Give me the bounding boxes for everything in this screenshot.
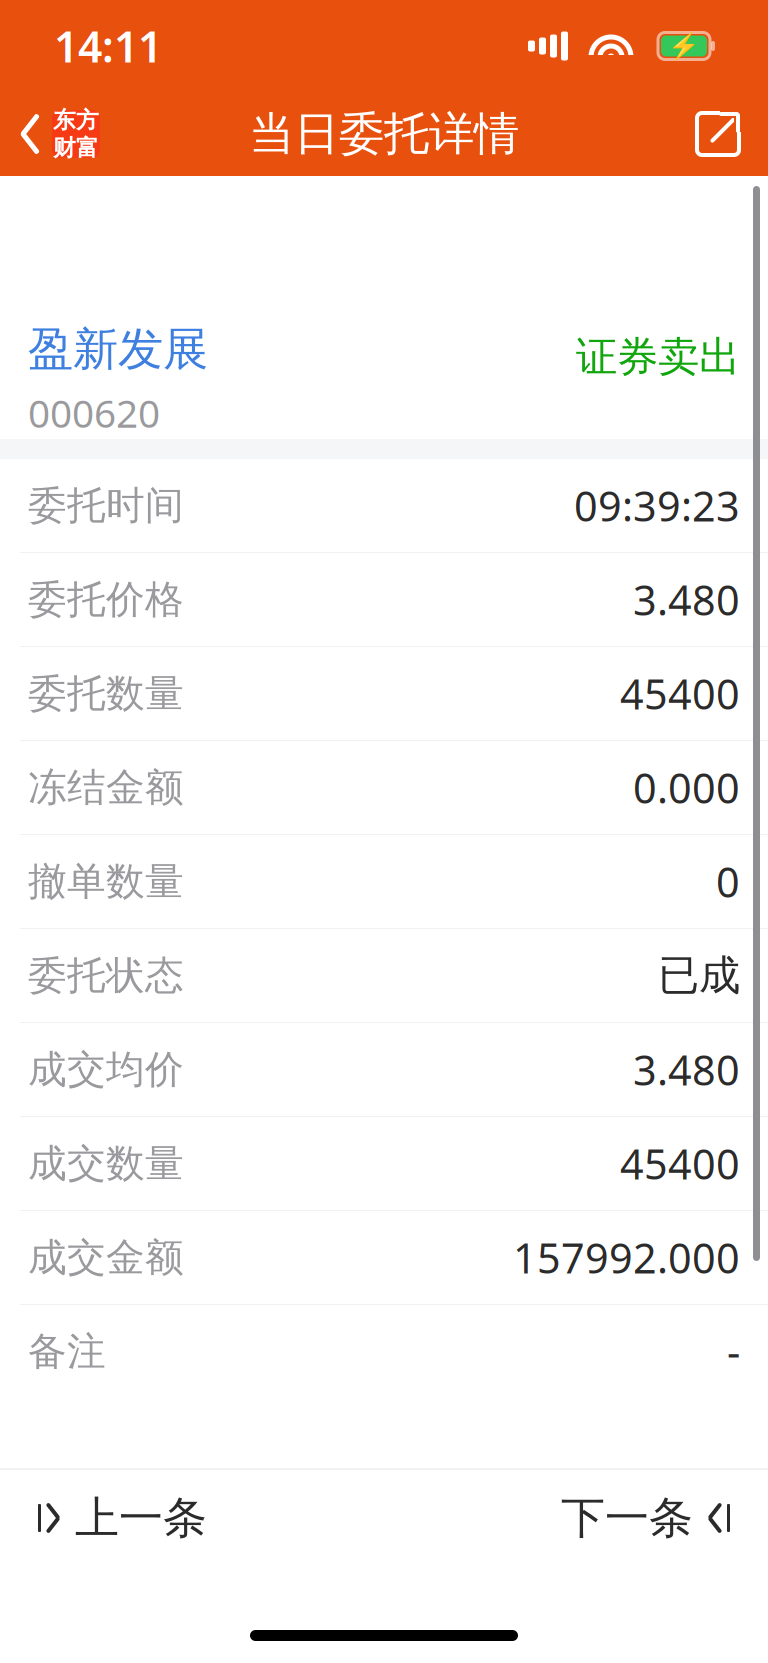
staticText: 盈新发展 — [28, 321, 208, 377]
staticText: 下一条 — [561, 1491, 693, 1545]
staticText: 157992.000 — [513, 1230, 740, 1285]
staticText: 委托价格 — [28, 576, 184, 623]
staticText: 委托状态 — [28, 952, 184, 999]
staticText: 撤单数量 — [28, 858, 184, 905]
staticText: 3.480 — [633, 1042, 740, 1097]
staticText: 备注 — [28, 1328, 106, 1375]
staticText: 东方 — [53, 106, 99, 134]
staticText: 45400 — [620, 666, 740, 721]
staticText: 成交金额 — [28, 1234, 184, 1281]
staticText: 0 — [716, 854, 740, 909]
staticText: ⚡ — [668, 31, 700, 60]
staticText: 成交数量 — [28, 1140, 184, 1187]
staticText: 证券卖出 — [576, 331, 740, 382]
staticText: 已成 — [658, 950, 740, 1001]
staticText: 3.480 — [633, 572, 740, 627]
staticText: 09:39:23 — [574, 478, 740, 533]
button[interactable]: Share — [668, 94, 768, 174]
button[interactable]: Back — [0, 94, 118, 174]
staticText: 财富 — [53, 134, 99, 162]
staticText: 0.000 — [633, 760, 740, 815]
staticText: 委托数量 — [28, 670, 184, 717]
staticText: 45400 — [620, 1136, 740, 1191]
staticText: 当日委托详情 — [249, 106, 519, 162]
staticText: 委托时间 — [28, 482, 184, 529]
staticText: 上一条 — [75, 1491, 207, 1545]
button[interactable]: 下一条 — [523, 1470, 768, 1566]
staticText: 冻结金额 — [28, 764, 184, 811]
button[interactable]: 上一条 — [0, 1470, 245, 1566]
staticText: 14:11 — [54, 18, 162, 74]
staticText: - — [727, 1324, 740, 1379]
staticText: 000620 — [28, 387, 160, 438]
staticText: 成交均价 — [28, 1046, 184, 1093]
